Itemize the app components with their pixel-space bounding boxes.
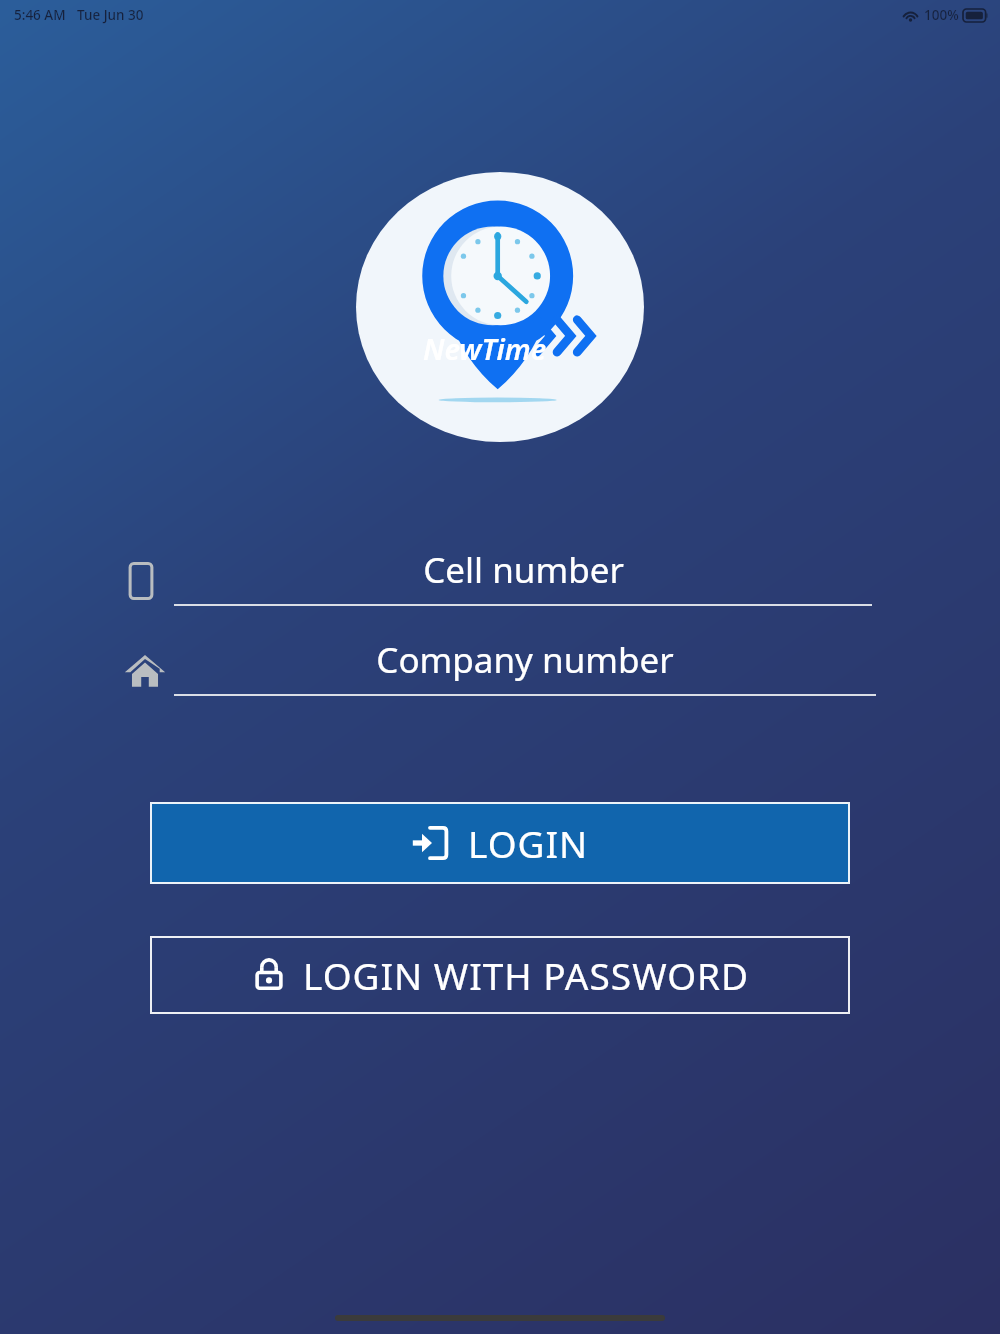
button[interactable]: LOGIN WITH PASSWORD — [150, 936, 850, 1014]
staticText: 5:46 AM — [14, 6, 66, 24]
staticText: 100% — [924, 6, 959, 24]
button[interactable]: Company number — [0, 626, 1000, 714]
staticText: LOGIN — [468, 818, 589, 868]
staticText: Cell number — [423, 546, 624, 594]
staticText: Company number — [376, 636, 674, 684]
staticText: NewTime — [423, 329, 547, 368]
button[interactable]: LOGIN — [150, 802, 850, 884]
staticText: Tue Jun 30 — [77, 6, 144, 24]
staticText: LOGIN WITH PASSWORD — [303, 950, 750, 1000]
button[interactable]: Cell number — [0, 536, 1000, 624]
